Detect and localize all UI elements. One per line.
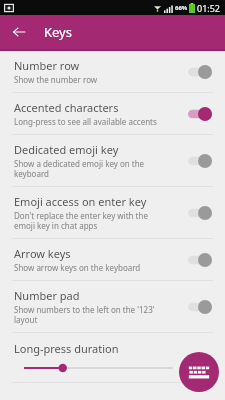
staticText: Don't replace the enter key with the emo…	[14, 210, 148, 231]
button[interactable]: On	[185, 104, 215, 124]
button[interactable]: Back	[8, 21, 30, 43]
staticText: Show arrow keys on the keyboard	[14, 262, 141, 273]
staticText: Number pad	[14, 288, 80, 303]
button[interactable]: Number row	[0, 51, 225, 92]
staticText: Number row	[14, 58, 80, 73]
staticText: Keys	[44, 23, 72, 41]
button[interactable]: Accented characters	[0, 93, 225, 134]
button[interactable]: Long-press duration	[0, 333, 225, 382]
staticText: Long-press to see all available accents	[14, 116, 157, 127]
button[interactable]: Arrow keys	[0, 239, 225, 280]
button[interactable]: Off	[185, 151, 215, 171]
button[interactable]: Key pop-ups	[0, 383, 225, 400]
button[interactable]: Off	[185, 62, 215, 82]
button[interactable]: Off	[185, 297, 215, 317]
button[interactable]: Off	[185, 250, 215, 270]
staticText: Accented characters	[14, 100, 119, 115]
button[interactable]: Number pad	[0, 281, 225, 332]
staticText: Show numbers to the left on the '123' la…	[14, 304, 155, 325]
staticText: Long-press duration	[14, 341, 119, 356]
staticText: Arrow keys	[14, 246, 71, 261]
button[interactable]: Off	[185, 203, 215, 223]
button[interactable]: Dedicated emoji key	[0, 135, 225, 186]
staticText: 01:52	[197, 2, 221, 14]
button[interactable]: Emoji access on enter key	[0, 187, 225, 238]
staticText: Show a dedicated emoji key on the keyboa…	[14, 158, 145, 179]
staticText: Emoji access on enter key	[14, 194, 147, 209]
staticText: Dedicated emoji key	[14, 142, 119, 157]
staticText: Show the number row	[14, 74, 98, 85]
staticText: 66%	[175, 4, 188, 12]
staticText: 450ms	[181, 362, 215, 374]
button[interactable]: Open keyboard	[179, 352, 219, 392]
